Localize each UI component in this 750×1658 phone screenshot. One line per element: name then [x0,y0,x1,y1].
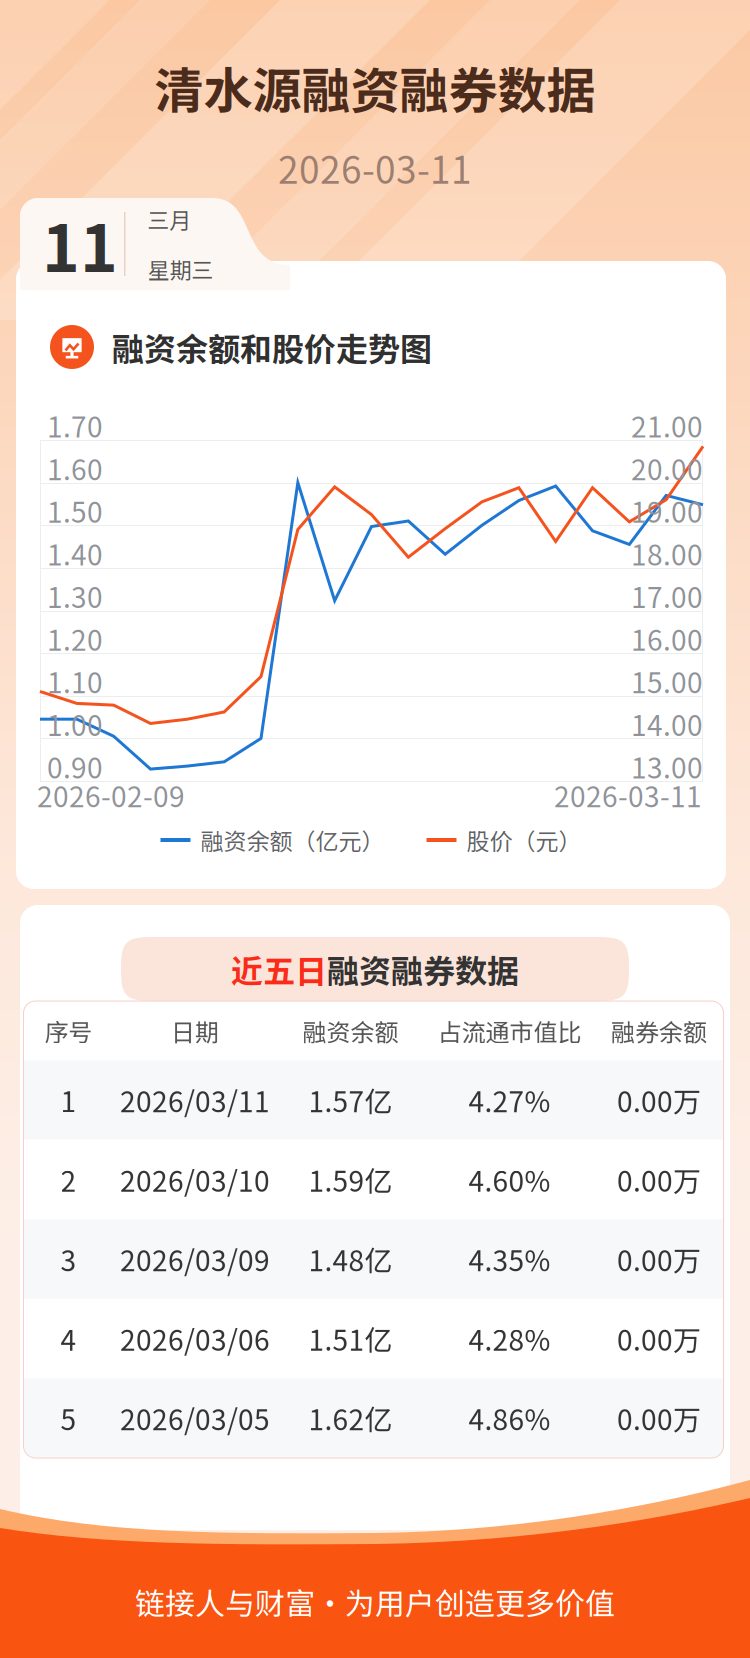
staticText: 2026/03/06 [120,1318,270,1359]
staticText: 融资余额和股价走势图 [112,324,432,370]
staticText: 21.00 [631,405,703,445]
staticText: 融券余额 [611,1013,707,1048]
staticText: 4.28% [468,1318,550,1359]
staticText: 股价（元） [466,823,581,857]
staticText: 14.00 [631,703,703,744]
staticText: 2026/03/09 [120,1239,270,1279]
staticText: 三月 [147,203,191,235]
staticText: 11 [42,198,118,290]
staticText: 1.30 [47,575,103,616]
staticText: 序号 [44,1013,92,1048]
staticText: 1.59亿 [308,1159,392,1200]
staticText: 13.00 [631,746,703,786]
staticText: 2026-03-11 [554,775,702,815]
staticText: 4.35% [468,1239,550,1279]
staticText: 1.57亿 [308,1080,392,1120]
staticText: 1.40 [47,533,103,573]
staticText: 1.51亿 [308,1318,392,1359]
staticText: 0.90 [47,746,103,786]
staticText: 20.00 [631,448,703,488]
staticText: 0.00万 [617,1239,701,1279]
staticText: 16.00 [631,618,703,659]
staticText: 2026-02-09 [37,775,185,815]
staticText: 星期三 [147,253,213,285]
staticText: 近五日 [231,946,327,992]
staticText: 0.00万 [617,1080,701,1120]
staticText: 日期 [171,1013,219,1048]
staticText: 融资余额（亿元） [200,823,384,857]
staticText: 清水源融资融券数据 [154,52,595,123]
staticText: 0.00万 [617,1318,701,1359]
staticText: 融资融券数据 [327,946,519,992]
staticText: 0.00万 [617,1398,701,1438]
staticText: 3 [60,1239,76,1279]
staticText: 2026/03/10 [120,1159,270,1200]
staticText: 1.48亿 [308,1239,392,1279]
staticText: 1.60 [47,448,103,488]
staticText: 2026/03/11 [120,1080,270,1120]
staticText: 1.10 [47,661,103,701]
staticText: 融资余额 [302,1013,398,1048]
staticText: 1.20 [47,618,103,659]
staticText: 19.00 [631,490,703,531]
staticText: 18.00 [631,533,703,573]
staticText: 链接人与财富·为用户创造更多价值 [135,1580,615,1623]
staticText: 15.00 [631,661,703,701]
staticText: 1.00 [47,703,103,744]
staticText: 4.60% [468,1159,550,1200]
staticText: 占流通市值比 [437,1013,581,1048]
staticText: 4.27% [468,1080,550,1120]
staticText: 0.00万 [617,1159,701,1200]
staticText: 1.50 [47,490,103,531]
staticText: 4 [60,1318,76,1359]
staticText: 1.62亿 [308,1398,392,1438]
staticText: 1 [60,1080,76,1120]
staticText: 1.70 [47,405,103,445]
staticText: 17.00 [631,575,703,616]
staticText: 2026/03/05 [120,1398,270,1438]
staticText: 2 [60,1159,76,1200]
staticText: 4.86% [468,1398,550,1438]
staticText: 5 [60,1398,76,1438]
staticText: 2026-03-11 [278,141,472,195]
